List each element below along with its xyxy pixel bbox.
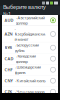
staticText: - Китайский юань: [14, 78, 45, 83]
staticText: CAD: [4, 56, 13, 61]
button[interactable]: BYR: [2, 42, 58, 53]
staticText: - Австралийский доллар: [15, 15, 44, 26]
staticText: CHF: [4, 67, 12, 72]
button[interactable]: CAD: [2, 53, 58, 64]
staticText: BYR: [4, 45, 12, 50]
staticText: AZN: [4, 31, 12, 37]
staticText: - Чешская крона: [14, 89, 44, 94]
button[interactable]: CHF: [2, 64, 58, 75]
staticText: Выберите валюту №1: [3, 3, 46, 18]
staticText: CZK: [4, 89, 12, 94]
staticText: - Швейцарский франк: [14, 64, 40, 75]
button[interactable]: CZK: [2, 86, 58, 97]
staticText: - Азербайджанский манат: [14, 26, 45, 42]
staticText: AUD: [4, 18, 13, 23]
button[interactable]: AZN: [2, 26, 58, 42]
staticText: - Канадский доллар: [15, 53, 35, 64]
button[interactable]: AUD: [2, 15, 58, 26]
staticText: CNY: [4, 78, 12, 83]
staticText: - Белорусский рубль: [14, 42, 38, 53]
button[interactable]: CNY: [2, 75, 58, 86]
